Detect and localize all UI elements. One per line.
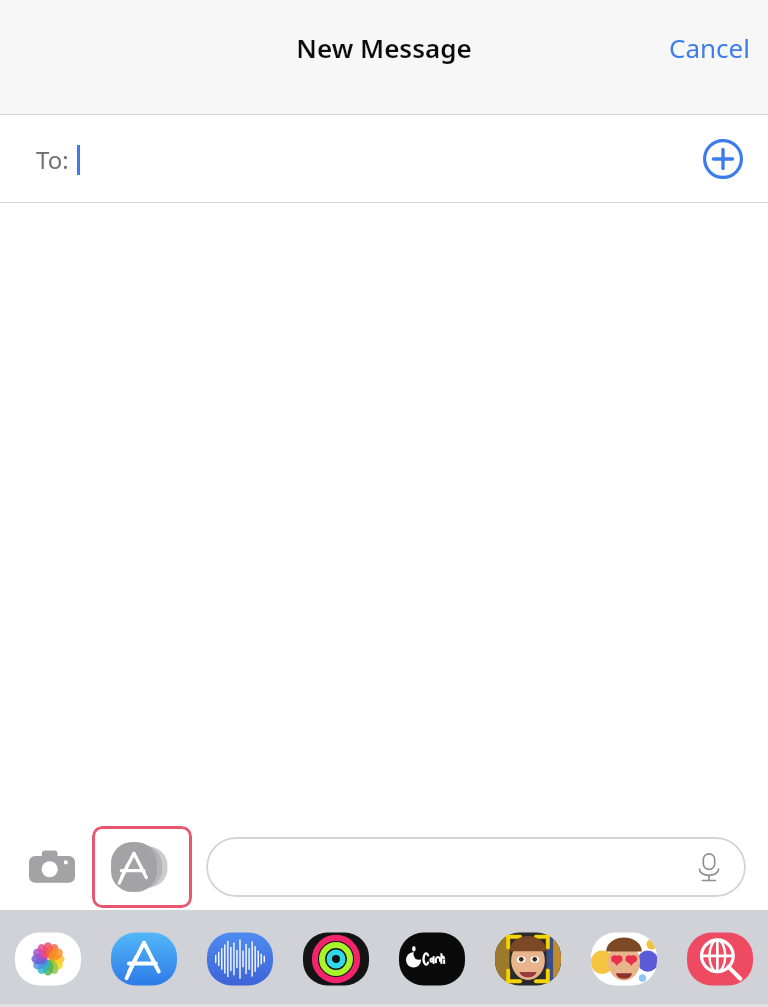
button[interactable]: Audio [192, 928, 288, 990]
button[interactable]: App Store [96, 928, 192, 990]
button[interactable]: Cancel [651, 22, 768, 73]
button[interactable]: Add contact [700, 136, 746, 182]
button[interactable]: Photos [0, 928, 96, 990]
staticText: Cancel [669, 30, 750, 65]
button[interactable]: Dictate [206, 837, 746, 897]
button[interactable]: Memoji Stickers [576, 928, 672, 990]
button[interactable]: Apple Cash [384, 928, 480, 990]
button[interactable]: #images [672, 928, 768, 990]
button[interactable]: Memoji [480, 928, 576, 990]
button[interactable]: iMessage apps [92, 826, 192, 908]
staticText: To: [36, 143, 69, 176]
button[interactable]: Camera [24, 839, 80, 895]
staticText: New Message [296, 30, 472, 65]
button[interactable]: Fitness [288, 928, 384, 990]
button[interactable]: Dictate [688, 846, 730, 888]
